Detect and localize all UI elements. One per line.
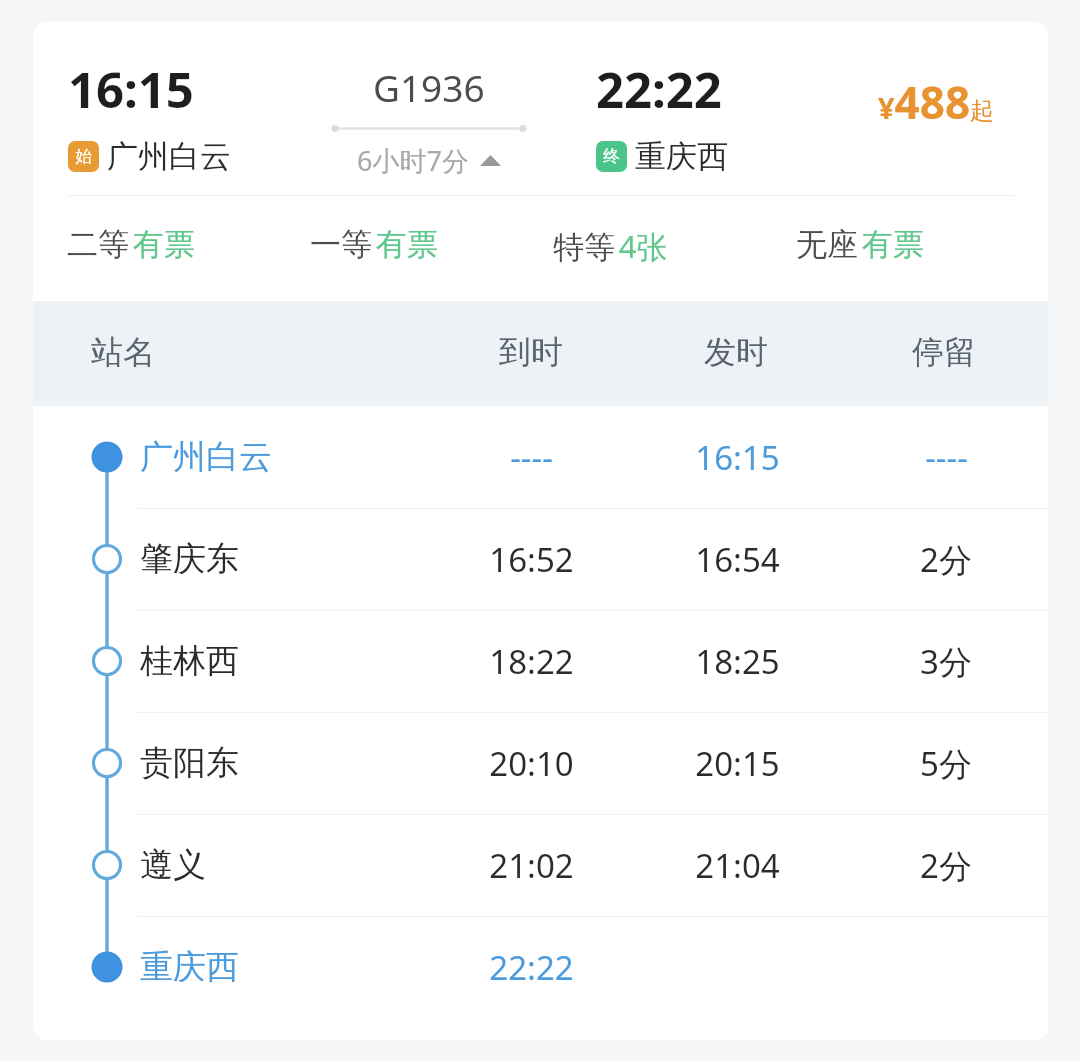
staticText: 2分 [920, 843, 972, 888]
button[interactable]: 无座 有票 [796, 225, 924, 264]
staticText: 18:22 [489, 639, 574, 684]
button[interactable]: 遵义 [33, 814, 1048, 916]
staticText: 16:54 [695, 537, 780, 582]
staticText: 6小时7分 [357, 142, 469, 179]
staticText: 16:15 [68, 56, 194, 123]
staticText: 发时 [704, 332, 768, 372]
button[interactable]: 贵阳东 [33, 712, 1048, 814]
staticText: 21:04 [695, 843, 780, 888]
button[interactable]: 广州白云 [33, 406, 1048, 508]
staticText: G1936 [373, 62, 485, 112]
button[interactable]: 桂林西 [33, 610, 1048, 712]
staticText: 无座 有票 [796, 225, 924, 264]
button[interactable]: 特等 4张 [553, 225, 668, 267]
staticText: ---- [925, 435, 968, 480]
button[interactable]: 重庆西 [33, 916, 1048, 1018]
staticText: 16:52 [489, 537, 574, 582]
staticText: 停留 [912, 332, 976, 372]
staticText: 20:15 [695, 741, 780, 786]
staticText: 2分 [920, 537, 972, 582]
staticText: 3分 [920, 639, 972, 684]
staticText: 16:15 [695, 435, 780, 480]
staticText: 广州白云 [107, 137, 231, 176]
button[interactable]: 肇庆东 [33, 508, 1048, 610]
staticText: 21:02 [489, 843, 574, 888]
staticText: 肇庆东 [140, 538, 239, 580]
staticText: ---- [510, 435, 553, 480]
staticText: 22:22 [596, 56, 722, 123]
staticText: 桂林西 [140, 640, 239, 682]
staticText: 18:25 [695, 639, 780, 684]
staticText: 重庆西 [140, 946, 239, 988]
button[interactable]: 16:15 [33, 22, 1048, 195]
staticText: 重庆西 [635, 137, 728, 176]
staticText: 20:10 [489, 741, 574, 786]
button[interactable]: ¥488起 [878, 72, 995, 132]
button[interactable]: 一等 有票 [310, 225, 438, 264]
button[interactable]: 二等 有票 [67, 225, 195, 264]
staticText: 广州白云 [140, 436, 272, 478]
staticText: 5分 [920, 741, 972, 786]
staticText: 站名 [91, 332, 155, 372]
staticText: 终 [603, 146, 620, 167]
staticText: ¥488起 [878, 72, 995, 132]
staticText: 二等 有票 [67, 225, 195, 264]
staticText: 22:22 [489, 945, 574, 990]
staticText: 贵阳东 [140, 742, 239, 784]
staticText: 特等 4张 [553, 225, 668, 267]
staticText: 遵义 [140, 844, 206, 886]
staticText: 一等 有票 [310, 225, 438, 264]
staticText: 始 [75, 146, 92, 167]
staticText: 到时 [499, 332, 563, 372]
